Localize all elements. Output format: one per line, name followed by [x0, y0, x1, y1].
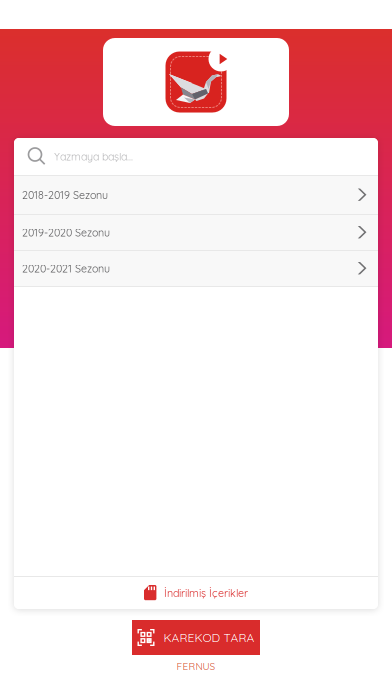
- button[interactable]: İndirilmiş İçerikler: [14, 577, 378, 609]
- button[interactable]: 2019-2020 Sezonu: [14, 215, 378, 250]
- staticText: 2018-2019 Sezonu: [22, 188, 108, 202]
- button[interactable]: 2018-2019 Sezonu: [14, 176, 378, 214]
- button[interactable]: 2020-2021 Sezonu: [14, 251, 378, 286]
- staticText: 2019-2020 Sezonu: [22, 226, 110, 239]
- button[interactable]: KAREKOD TARA: [132, 620, 260, 655]
- staticText: FERNUS: [176, 660, 215, 672]
- staticText: Yazmaya başla...: [54, 150, 133, 163]
- staticText: İndirilmiş İçerikler: [164, 586, 248, 600]
- staticText: 2020-2021 Sezonu: [22, 262, 110, 275]
- staticText: KAREKOD TARA: [163, 630, 254, 645]
